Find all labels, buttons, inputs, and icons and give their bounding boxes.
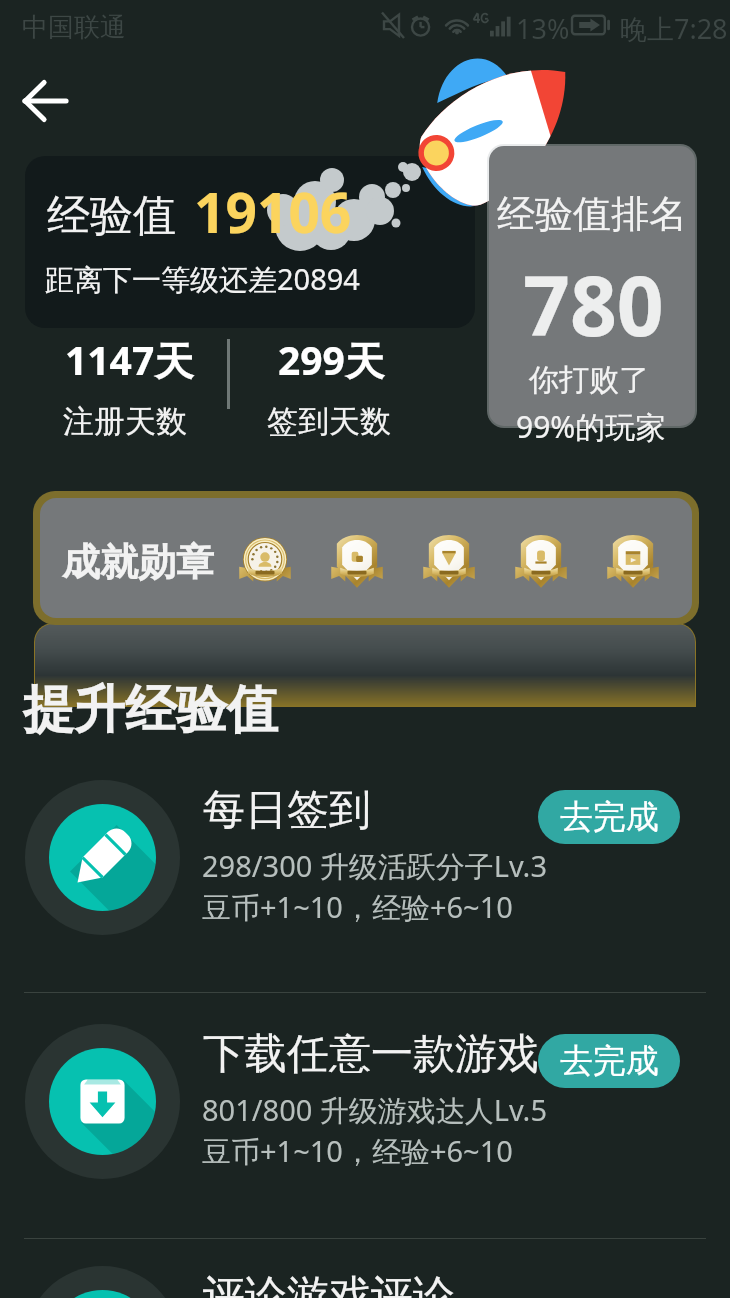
staticText: 提升经验值	[23, 678, 278, 742]
staticText: 经验值	[47, 189, 176, 243]
staticText: 99%的玩家	[516, 406, 666, 447]
staticText: 1147天	[65, 333, 194, 386]
button[interactable]: 成就勋章	[40, 498, 692, 618]
staticText: 豆币+1~10，经验+6~10	[202, 887, 513, 927]
staticText: 豆币+1~10，经验+6~10	[202, 1131, 513, 1171]
staticText: 注册天数	[63, 402, 187, 441]
button[interactable]	[489, 146, 695, 426]
staticText: 你打败了	[529, 361, 649, 399]
staticText: 13%	[516, 10, 570, 47]
staticText: 299天	[278, 333, 384, 386]
button[interactable]: 每日签到	[0, 778, 730, 992]
staticText: 298/300 升级活跃分子Lv.3	[202, 846, 547, 886]
staticText: 签到天数	[267, 402, 391, 441]
staticText: 19106	[194, 174, 352, 249]
button[interactable]: Back	[10, 66, 80, 136]
staticText: 801/800 升级游戏达人Lv.5	[202, 1090, 547, 1130]
staticText: 去完成	[560, 796, 659, 838]
button[interactable]: 去完成	[538, 790, 680, 844]
staticText: 经验值排名	[497, 190, 687, 238]
button[interactable]: 评论游戏评论	[0, 1264, 730, 1298]
button[interactable]: 下载任意一款游戏	[0, 1022, 730, 1236]
staticText: 评论游戏评论	[203, 1270, 455, 1298]
staticText: 距离下一等级还差20894	[45, 259, 360, 299]
button[interactable]	[25, 156, 475, 328]
staticText: 成就勋章	[62, 538, 214, 586]
staticText: 晚上7:28	[620, 10, 728, 47]
staticText: 去完成	[560, 1040, 659, 1082]
staticText: 780	[523, 248, 664, 360]
staticText: 下载任意一款游戏	[203, 1028, 539, 1081]
staticText: 中国联通	[22, 11, 126, 44]
staticText: 每日签到	[203, 784, 371, 837]
button[interactable]: 去完成	[538, 1034, 680, 1088]
